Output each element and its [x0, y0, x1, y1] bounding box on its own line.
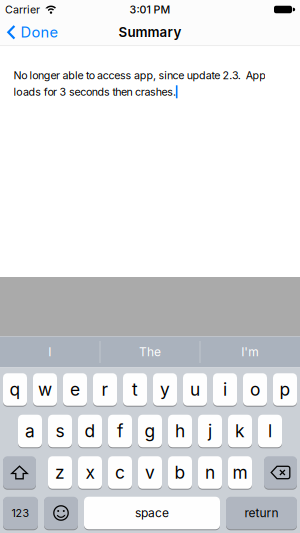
- staticText: q: [9, 379, 20, 400]
- staticText: s: [55, 421, 64, 441]
- staticText: t: [132, 379, 138, 400]
- staticText: p: [279, 379, 290, 400]
- button[interactable]: m: [228, 456, 252, 489]
- button[interactable]: return: [226, 497, 297, 529]
- button[interactable]: q: [3, 373, 27, 406]
- button[interactable]: v: [138, 456, 162, 489]
- staticText: d: [84, 421, 95, 441]
- button[interactable]: w: [33, 373, 57, 406]
- button[interactable]: x: [78, 456, 102, 489]
- staticText: loads for 3 seconds then crashes.: [13, 85, 176, 98]
- button[interactable]: j: [198, 415, 222, 447]
- button[interactable]: t: [123, 373, 147, 406]
- button[interactable]: r: [93, 373, 117, 406]
- button[interactable]: Numbers: [3, 497, 38, 529]
- button[interactable]: k: [228, 415, 252, 447]
- button[interactable]: e: [63, 373, 87, 406]
- staticText: k: [235, 421, 245, 441]
- staticText: 123: [11, 507, 29, 519]
- staticText: o: [250, 379, 260, 400]
- staticText: Carrier: [5, 3, 40, 16]
- button[interactable]: f: [108, 415, 132, 447]
- button[interactable]: a: [18, 415, 42, 447]
- staticText: e: [70, 379, 80, 400]
- button[interactable]: y: [153, 373, 177, 406]
- button[interactable]: u: [183, 373, 207, 406]
- button[interactable]: g: [138, 415, 162, 447]
- staticText: i: [223, 379, 227, 400]
- staticText: v: [145, 462, 155, 483]
- staticText: y: [160, 379, 170, 400]
- button[interactable]: s: [48, 415, 72, 447]
- button[interactable]: Delete: [264, 456, 297, 489]
- button[interactable]: p: [273, 373, 297, 406]
- staticText: I'm: [241, 345, 259, 359]
- button[interactable]: i: [213, 373, 237, 406]
- staticText: space: [135, 506, 169, 520]
- button[interactable]: I'm: [200, 336, 300, 367]
- staticText: b: [174, 462, 185, 483]
- staticText: return: [244, 506, 278, 520]
- staticText: u: [190, 379, 200, 400]
- staticText: Done: [20, 24, 58, 41]
- staticText: c: [115, 462, 125, 483]
- staticText: z: [55, 462, 65, 483]
- staticText: No longer able to access app, since upda…: [13, 69, 266, 82]
- button[interactable]: d: [78, 415, 102, 447]
- staticText: h: [175, 421, 185, 441]
- staticText: The: [139, 345, 161, 359]
- button[interactable]: I: [0, 336, 99, 367]
- staticText: l: [268, 421, 272, 441]
- staticText: r: [101, 379, 108, 400]
- staticText: g: [144, 421, 155, 441]
- button[interactable]: space: [84, 497, 220, 529]
- staticText: Summary: [118, 24, 181, 40]
- button[interactable]: b: [168, 456, 192, 489]
- button[interactable]: The: [100, 336, 199, 367]
- button[interactable]: o: [243, 373, 267, 406]
- button[interactable]: Emoji: [44, 497, 78, 529]
- staticText: j: [208, 421, 212, 441]
- staticText: f: [117, 421, 123, 441]
- button[interactable]: h: [168, 415, 192, 447]
- staticText: 3:01 PM: [129, 3, 170, 16]
- staticText: m: [232, 462, 247, 483]
- button[interactable]: z: [48, 456, 72, 489]
- staticText: a: [25, 421, 35, 441]
- staticText: n: [205, 462, 215, 483]
- staticText: x: [85, 462, 94, 483]
- button[interactable]: Done: [0, 24, 58, 41]
- staticText: I: [48, 345, 51, 359]
- button[interactable]: l: [258, 415, 282, 447]
- button[interactable]: c: [108, 456, 132, 489]
- button[interactable]: Shift: [3, 456, 36, 489]
- button[interactable]: n: [198, 456, 222, 489]
- staticText: w: [38, 379, 52, 400]
